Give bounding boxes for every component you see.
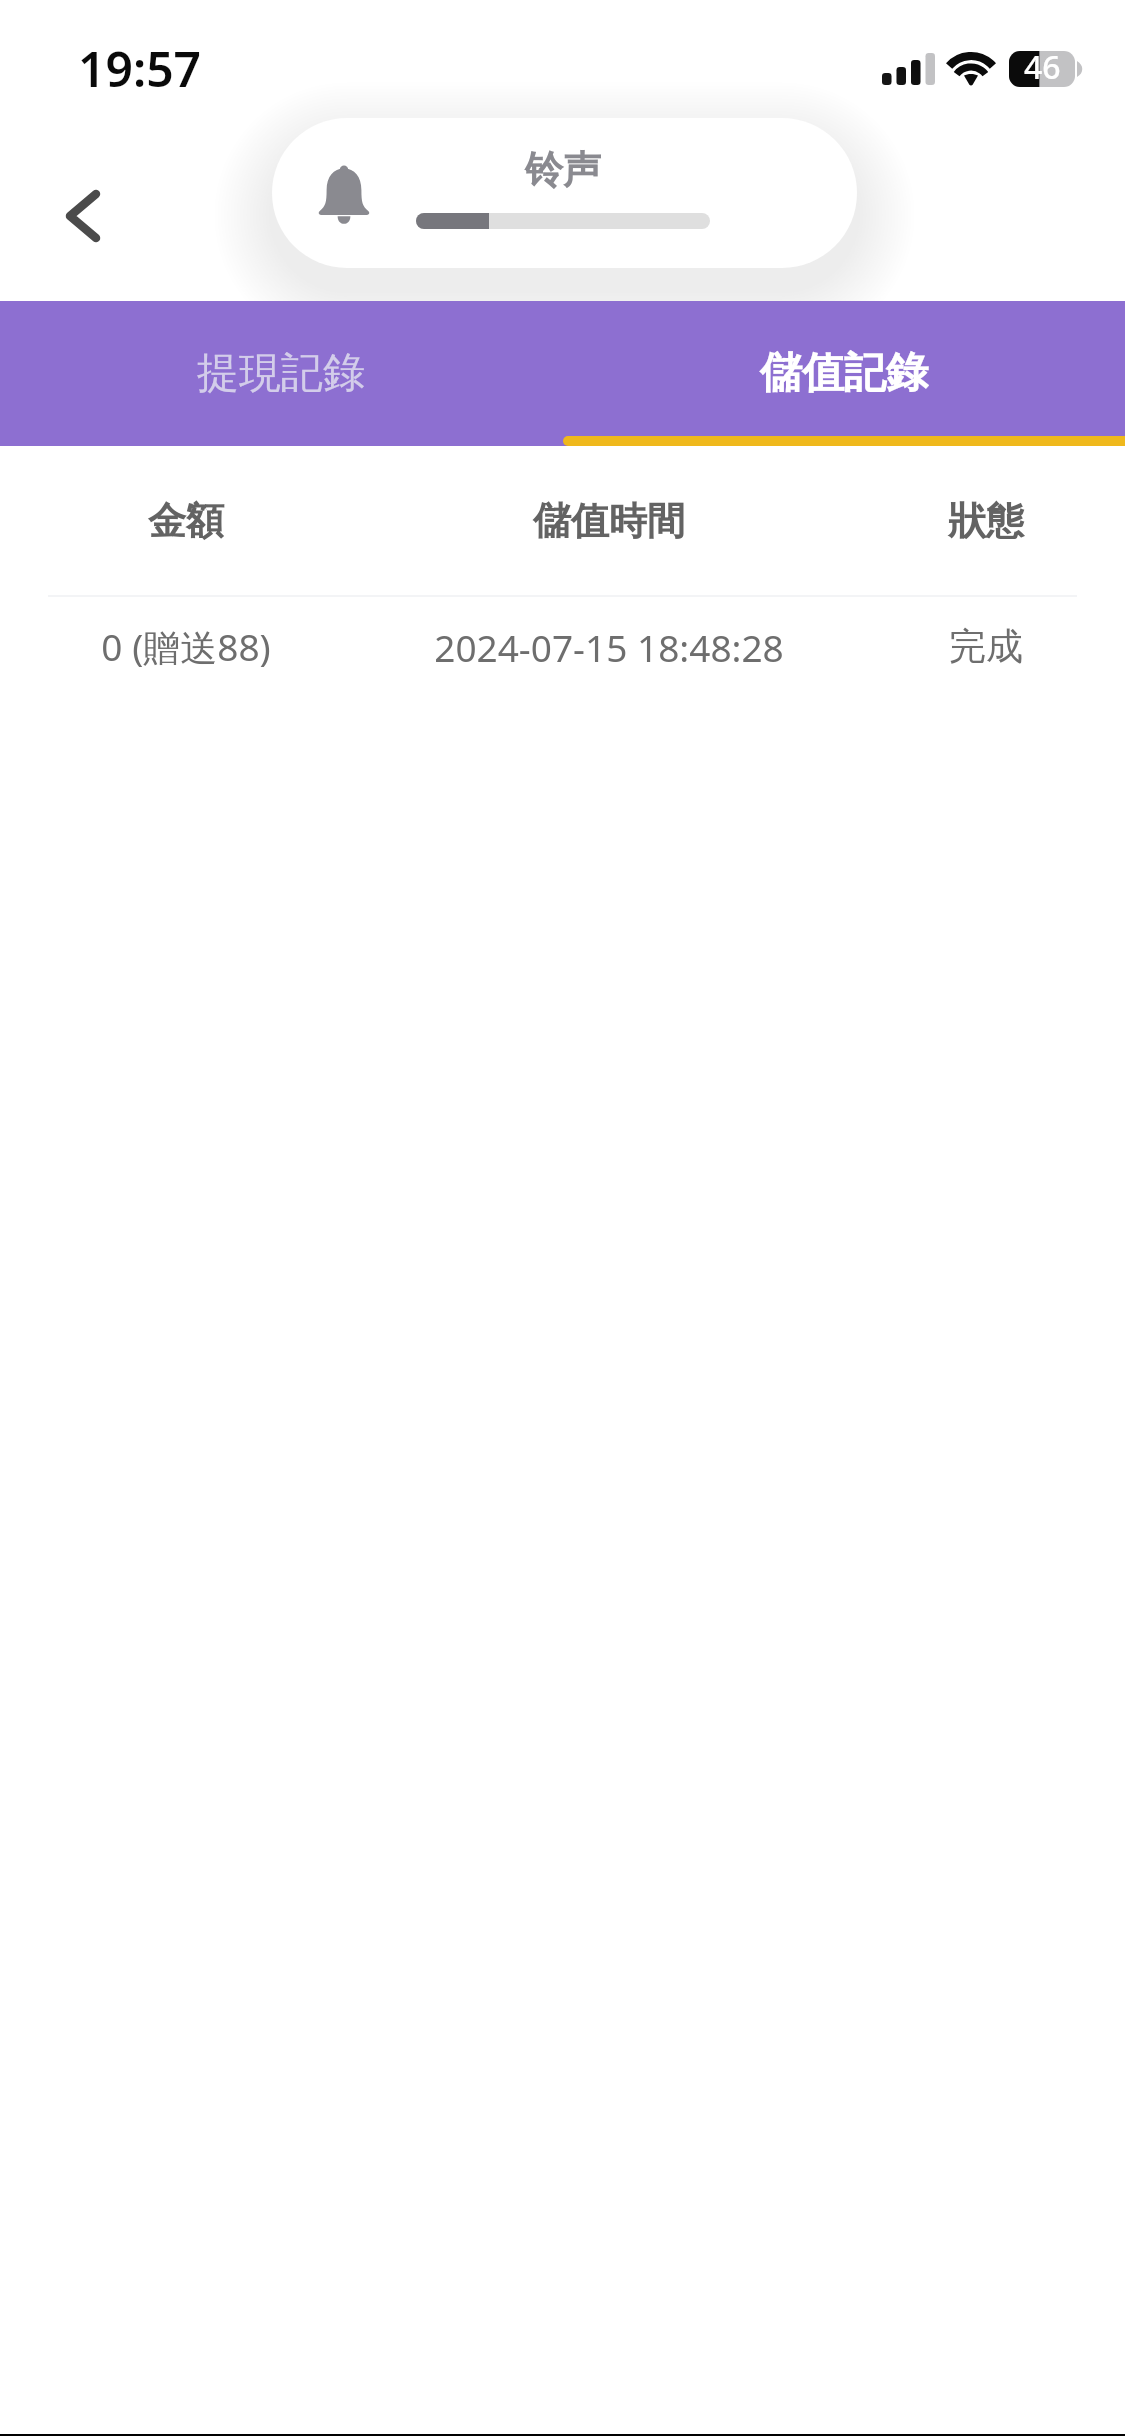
staticText: 0 (贈送88) — [101, 621, 271, 672]
staticText: 儲值記錄 — [760, 347, 928, 400]
staticText: 狀態 — [948, 497, 1024, 545]
button[interactable]: 儲值記錄 — [562, 301, 1125, 446]
button[interactable]: 0 (贈送88) — [0, 597, 1125, 696]
staticText: 19:57 — [78, 36, 202, 101]
staticText: 金額 — [148, 497, 224, 545]
button[interactable]: Back — [22, 162, 142, 282]
button[interactable]: 提現記錄 — [0, 301, 562, 446]
staticText: 完成 — [949, 623, 1023, 670]
staticText: 2024-07-15 18:48:28 — [434, 622, 784, 672]
staticText: 儲值時間 — [533, 497, 685, 545]
staticText: 提現記錄 — [197, 347, 365, 400]
staticText: 46 — [1024, 45, 1061, 81]
staticText: 铃声 — [525, 146, 601, 194]
